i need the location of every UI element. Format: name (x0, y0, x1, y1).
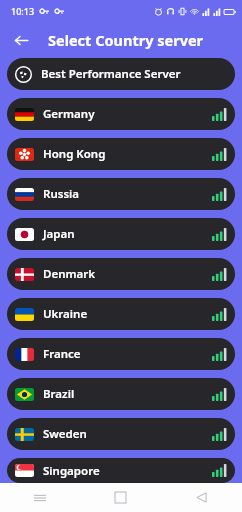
staticText: Germany (43, 106, 95, 122)
staticText: Japan (43, 226, 75, 242)
staticText: Singapore (43, 463, 100, 479)
button[interactable]: Home (80, 483, 161, 512)
button[interactable]: Hong Kong (7, 138, 235, 170)
button[interactable]: Ukraine (7, 298, 235, 330)
button[interactable]: Russia (7, 178, 235, 210)
staticText: Select Country server (48, 30, 204, 50)
staticText: France (43, 346, 81, 362)
staticText: Ukraine (43, 306, 88, 322)
button[interactable]: Japan (7, 218, 235, 250)
staticText: Brazil (43, 386, 75, 402)
staticText: Best Performance Server (41, 66, 181, 82)
staticText: Russia (43, 186, 80, 202)
staticText: Hong Kong (43, 146, 106, 162)
button[interactable]: Brazil (7, 378, 235, 410)
button[interactable]: Back (161, 483, 242, 512)
staticText: Sweden (43, 426, 87, 442)
button[interactable]: Denmark (7, 258, 235, 290)
button[interactable]: Sweden (7, 418, 235, 450)
button[interactable]: Germany (7, 98, 235, 130)
button[interactable]: Back (8, 27, 34, 53)
staticText: 10:13 (11, 5, 35, 17)
button[interactable]: France (7, 338, 235, 370)
button[interactable]: Best Performance Server (7, 58, 235, 90)
button[interactable]: Recent apps (0, 483, 80, 512)
button[interactable]: Singapore (7, 458, 235, 483)
staticText: Denmark (43, 266, 96, 282)
